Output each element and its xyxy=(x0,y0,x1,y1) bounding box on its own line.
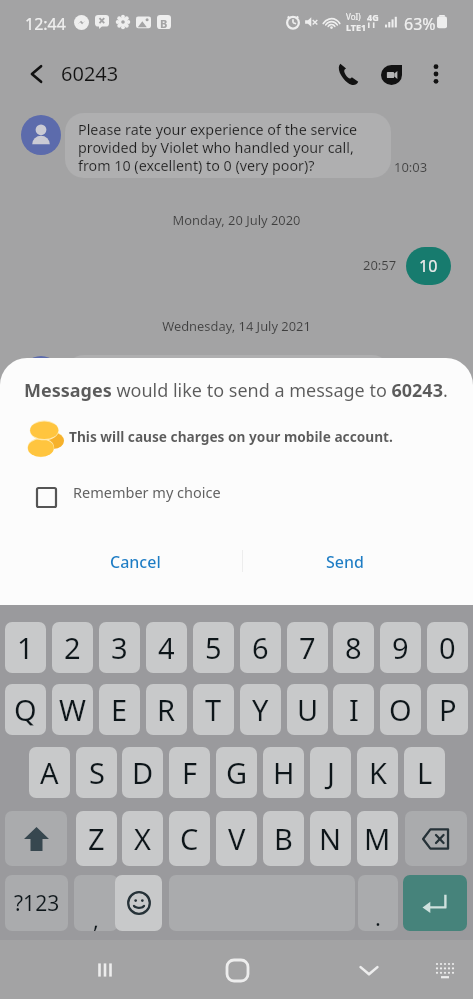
staticText: 3 xyxy=(111,628,128,667)
button[interactable]: 8 xyxy=(333,622,374,673)
staticText: F xyxy=(182,753,198,792)
button[interactable]: Period xyxy=(358,875,398,931)
staticText: 60243 xyxy=(61,60,119,87)
button[interactable]: ?123 xyxy=(5,875,68,931)
staticText: This will cause charges on your mobile a… xyxy=(69,427,393,446)
button[interactable]: D xyxy=(122,747,163,798)
staticText: B xyxy=(274,819,293,858)
staticText: R xyxy=(157,690,176,729)
button[interactable]: B xyxy=(263,811,304,866)
staticText: 5 xyxy=(205,628,222,667)
button[interactable]: V xyxy=(216,811,257,866)
button[interactable]: R xyxy=(146,684,187,735)
staticText: Send xyxy=(326,551,364,573)
staticText: L xyxy=(417,753,433,792)
button[interactable]: U xyxy=(287,684,328,735)
button[interactable]: Emoji xyxy=(115,875,162,931)
button[interactable]: O xyxy=(380,684,421,735)
button[interactable]: 1 xyxy=(5,622,46,673)
button[interactable]: M xyxy=(357,811,398,866)
button[interactable]: Change keyboard xyxy=(428,953,462,987)
staticText: P xyxy=(439,690,457,729)
button[interactable]: 3 xyxy=(99,622,140,673)
staticText: Y xyxy=(252,690,269,729)
staticText: N xyxy=(319,819,342,858)
button[interactable]: E xyxy=(99,684,140,735)
button[interactable]: 4 xyxy=(146,622,187,673)
button[interactable]: P xyxy=(427,684,468,735)
staticText: X xyxy=(134,819,151,858)
button[interactable]: 9 xyxy=(380,622,421,673)
staticText: 4 xyxy=(158,628,175,667)
button[interactable]: K xyxy=(357,747,398,798)
button[interactable]: J xyxy=(310,747,351,798)
staticText: T xyxy=(205,690,222,729)
staticText: 4G xyxy=(367,11,379,23)
button[interactable]: More options xyxy=(420,58,452,90)
button[interactable]: Back xyxy=(20,57,54,91)
button[interactable]: 7 xyxy=(287,622,328,673)
button[interactable]: X xyxy=(122,811,163,866)
button[interactable]: Hide keyboard xyxy=(352,953,386,987)
button[interactable]: Video call xyxy=(371,55,411,95)
staticText: M xyxy=(364,819,391,858)
staticText: V xyxy=(228,819,246,858)
staticText: 2 xyxy=(64,628,81,667)
staticText: Remember my choice xyxy=(73,482,221,502)
button[interactable]: Shift xyxy=(5,811,67,866)
button[interactable]: I xyxy=(333,684,374,735)
staticText: G xyxy=(226,753,248,792)
staticText: 0 xyxy=(439,628,456,667)
button[interactable]: F xyxy=(169,747,210,798)
button[interactable]: 6 xyxy=(240,622,281,673)
staticText: Q xyxy=(14,690,37,729)
button[interactable]: L xyxy=(404,747,445,798)
button[interactable]: Enter xyxy=(403,875,467,931)
staticText: 1 xyxy=(17,628,34,667)
staticText: Wednesday, 14 July 2021 xyxy=(0,317,473,335)
button[interactable]: G xyxy=(216,747,257,798)
staticText: , xyxy=(93,904,99,931)
staticText: A xyxy=(40,753,59,792)
staticText: B xyxy=(160,16,168,31)
button[interactable]: Recents xyxy=(88,953,122,987)
staticText: 7 xyxy=(299,628,316,667)
button[interactable]: Cancel xyxy=(85,543,185,581)
button[interactable]: Z xyxy=(76,811,117,866)
staticText: Cancel xyxy=(110,551,161,573)
staticText: Z xyxy=(88,819,105,858)
button[interactable]: Home xyxy=(220,953,254,987)
staticText: J xyxy=(327,753,335,792)
staticText: 10:03 xyxy=(394,158,428,176)
staticText: 12:44 xyxy=(25,13,66,35)
button[interactable]: H xyxy=(263,747,304,798)
staticText: Please rate your experience of the servi… xyxy=(78,120,358,175)
button[interactable]: Y xyxy=(240,684,281,735)
button[interactable]: Call xyxy=(332,58,364,90)
button[interactable]: Q xyxy=(5,684,46,735)
staticText: Messages would like to send a message to… xyxy=(24,378,448,403)
staticText: K xyxy=(369,753,387,792)
staticText: Monday, 20 July 2020 xyxy=(0,211,473,229)
button[interactable]: W xyxy=(52,684,93,735)
staticText: W xyxy=(59,690,86,729)
button[interactable]: N xyxy=(310,811,351,866)
button[interactable]: Send xyxy=(295,543,395,581)
staticText: 20:57 xyxy=(363,256,397,274)
staticText: H xyxy=(273,753,295,792)
button[interactable]: T xyxy=(193,684,234,735)
button[interactable]: 0 xyxy=(427,622,468,673)
staticText: LTE1 xyxy=(346,21,367,33)
staticText: I xyxy=(349,690,359,729)
button[interactable]: S xyxy=(76,747,117,798)
button[interactable]: Remember my choice xyxy=(24,470,244,514)
staticText: E xyxy=(111,690,128,729)
button[interactable]: Comma xyxy=(74,875,118,931)
button[interactable]: C xyxy=(169,811,210,866)
staticText: C xyxy=(180,819,199,858)
button[interactable]: Backspace xyxy=(405,811,467,866)
button[interactable]: 2 xyxy=(52,622,93,673)
button[interactable]: 5 xyxy=(193,622,234,673)
button[interactable]: A xyxy=(29,747,70,798)
